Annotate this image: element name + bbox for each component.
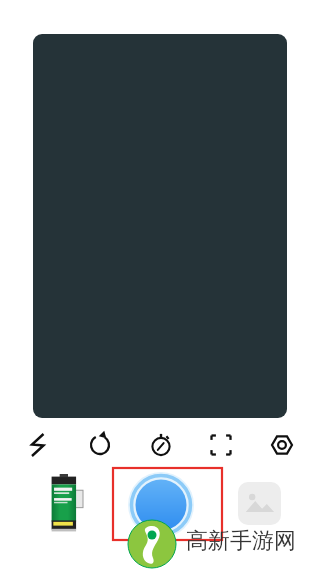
button[interactable]: Flash (18, 425, 58, 465)
button[interactable]: Shutter (128, 472, 194, 538)
button[interactable]: Aspect ratio (201, 425, 241, 465)
button[interactable]: Film stock (48, 474, 84, 532)
button[interactable]: Settings (262, 425, 302, 465)
staticText: 高新手游网 (186, 527, 296, 555)
button[interactable]: Timer (141, 425, 181, 465)
button[interactable]: Switch camera (80, 425, 120, 465)
button[interactable]: Camera preview (33, 34, 287, 418)
button[interactable]: Gallery (238, 482, 281, 525)
